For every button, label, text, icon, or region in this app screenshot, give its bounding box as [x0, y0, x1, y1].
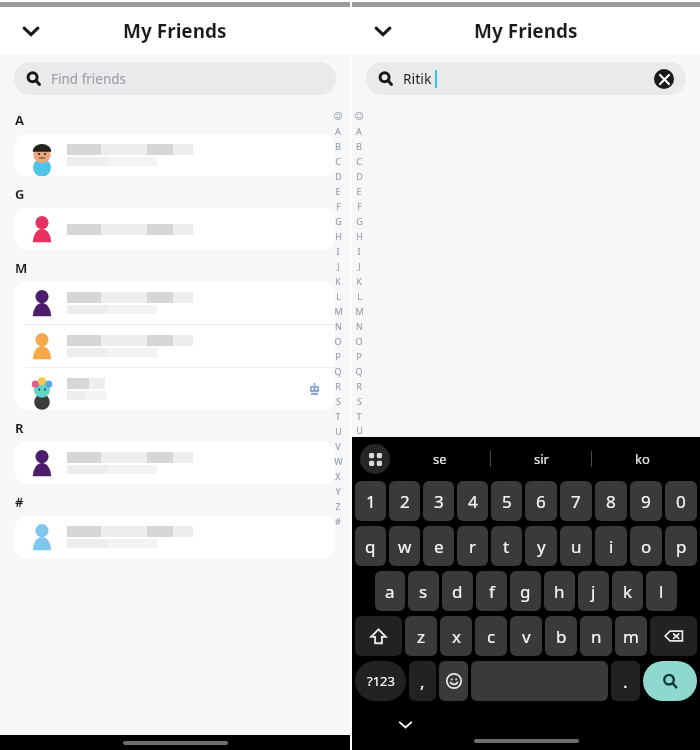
button[interactable]: p	[665, 526, 697, 566]
button[interactable]: se	[390, 437, 490, 481]
staticText: k	[623, 580, 633, 603]
button[interactable]: 0	[665, 481, 697, 521]
button[interactable]: Shift	[355, 616, 402, 656]
button[interactable]: b	[545, 616, 577, 656]
button[interactable]	[15, 368, 335, 410]
staticText: F	[336, 200, 341, 212]
button[interactable]	[15, 134, 335, 176]
button[interactable]: 3	[423, 481, 454, 521]
staticText: V	[335, 440, 341, 452]
button[interactable]: h	[544, 571, 575, 611]
staticText: H	[356, 230, 363, 242]
button[interactable]	[15, 282, 335, 324]
button[interactable]: m	[615, 616, 647, 656]
button[interactable]: Collapse	[14, 14, 48, 48]
button[interactable]: ?123	[355, 661, 406, 701]
button[interactable]: f	[476, 571, 507, 611]
button[interactable]: u	[560, 526, 592, 566]
button[interactable]: ko	[592, 437, 692, 481]
staticText: U	[356, 424, 363, 436]
button[interactable]: Hide keyboard	[392, 711, 418, 737]
button[interactable]: Space	[471, 661, 608, 701]
staticText: R	[15, 419, 24, 437]
staticText: J	[337, 260, 340, 272]
staticText: ☺	[333, 111, 343, 121]
staticText: j	[591, 580, 596, 603]
staticText: Q	[355, 365, 363, 377]
button[interactable]: k	[612, 571, 643, 611]
button[interactable]: sir	[491, 437, 591, 481]
button[interactable]: Backspace	[650, 616, 697, 656]
staticText: 5	[502, 490, 512, 513]
staticText: G	[356, 215, 363, 227]
staticText: s	[419, 580, 428, 603]
staticText: R	[335, 380, 341, 392]
button[interactable]	[15, 516, 335, 558]
button[interactable]: e	[423, 526, 454, 566]
button[interactable]: i	[595, 526, 627, 566]
button[interactable]: w	[389, 526, 420, 566]
staticText: Ritik	[403, 70, 432, 88]
staticText: B	[356, 140, 362, 152]
staticText: 0	[676, 490, 686, 513]
button[interactable]: Collapse	[366, 14, 400, 48]
button[interactable]: z	[405, 616, 437, 656]
button[interactable]: j	[578, 571, 609, 611]
button[interactable]: Emoji	[439, 661, 468, 701]
button[interactable]	[15, 208, 335, 250]
staticText: n	[591, 625, 602, 648]
staticText: L	[357, 290, 362, 302]
button[interactable]: 2	[389, 481, 420, 521]
staticText: ko	[635, 450, 650, 468]
staticText: e	[434, 535, 444, 558]
button[interactable]: Keyboard options	[360, 444, 390, 474]
staticText: G	[15, 185, 25, 203]
staticText: 8	[606, 490, 616, 513]
staticText: M	[15, 259, 28, 277]
button[interactable]: Ritik	[366, 62, 686, 95]
button[interactable]: g	[510, 571, 541, 611]
staticText: J	[358, 260, 361, 272]
staticText: ?123	[367, 672, 395, 690]
staticText: E	[335, 185, 341, 197]
button[interactable]: a	[375, 571, 405, 611]
button[interactable]: l	[646, 571, 677, 611]
button[interactable]	[15, 442, 335, 484]
staticText: Find friends	[51, 70, 127, 88]
button[interactable]: y	[525, 526, 557, 566]
button[interactable]: 5	[491, 481, 522, 521]
staticText: O	[355, 335, 363, 347]
button[interactable]: t	[491, 526, 522, 566]
button[interactable]: c	[475, 616, 507, 656]
button[interactable]: 7	[560, 481, 592, 521]
staticText: c	[487, 625, 496, 648]
staticText: Q	[334, 365, 342, 377]
button[interactable]: d	[442, 571, 473, 611]
button[interactable]	[15, 325, 335, 367]
button[interactable]: Clear search	[654, 69, 674, 89]
button[interactable]: Find friends	[14, 62, 336, 95]
button[interactable]: Search	[643, 661, 697, 701]
staticText: N	[356, 320, 363, 332]
staticText: 1	[366, 490, 376, 513]
button[interactable]: r	[457, 526, 488, 566]
button[interactable]: 6	[525, 481, 557, 521]
button[interactable]: 1	[355, 481, 386, 521]
button[interactable]: q	[355, 526, 386, 566]
staticText: M	[355, 305, 364, 317]
staticText: I	[357, 245, 361, 257]
button[interactable]: .	[611, 661, 640, 701]
button[interactable]: n	[580, 616, 612, 656]
staticText: d	[452, 580, 463, 603]
button[interactable]: 8	[595, 481, 627, 521]
button[interactable]: x	[440, 616, 472, 656]
button[interactable]: 4	[457, 481, 488, 521]
staticText: G	[335, 215, 342, 227]
button[interactable]: 9	[630, 481, 662, 521]
staticText: Y	[335, 485, 341, 497]
button[interactable]: o	[630, 526, 662, 566]
button[interactable]: ,	[409, 661, 436, 701]
button[interactable]: v	[510, 616, 542, 656]
staticText: x	[452, 625, 461, 648]
button[interactable]: s	[408, 571, 439, 611]
